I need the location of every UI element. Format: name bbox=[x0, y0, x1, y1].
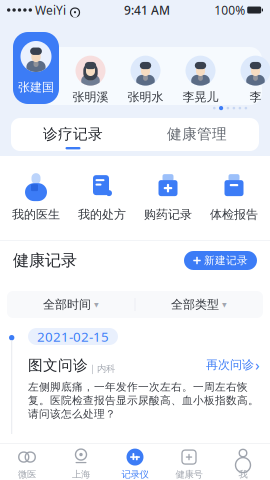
button[interactable]: 健康管理 bbox=[135, 118, 259, 151]
button[interactable]: 新建记录 bbox=[184, 251, 257, 270]
staticText: 2021-02-15 bbox=[37, 328, 109, 345]
button[interactable]: 记录仪 bbox=[108, 444, 162, 480]
staticText: 诊疗记录 bbox=[43, 125, 103, 143]
staticText: ▾ bbox=[222, 299, 227, 310]
staticText: 李 bbox=[249, 90, 261, 104]
staticText: 体检报告 bbox=[210, 207, 258, 222]
button[interactable]: 全部类型 bbox=[135, 291, 262, 318]
staticText: 图文问诊 bbox=[28, 356, 88, 374]
staticText: 全部时间 bbox=[43, 297, 91, 312]
staticText: 张明水 bbox=[127, 90, 163, 104]
staticText: 上海 bbox=[72, 469, 90, 480]
button[interactable]: 我 bbox=[216, 444, 270, 480]
staticText: 我 bbox=[238, 469, 247, 480]
button[interactable]: 李晃儿 bbox=[173, 55, 228, 105]
staticText: 健康管理 bbox=[167, 125, 227, 143]
button[interactable]: 再次问诊 bbox=[206, 355, 260, 374]
button[interactable]: 李 bbox=[228, 55, 270, 105]
button[interactable]: 微医 bbox=[0, 444, 54, 480]
staticText: 微医 bbox=[18, 469, 36, 480]
staticText: ▾ bbox=[94, 299, 99, 310]
button[interactable]: 购药记录 bbox=[135, 170, 201, 224]
staticText: 张明溪 bbox=[72, 90, 108, 104]
button[interactable]: 张建国 bbox=[13, 32, 59, 104]
staticText: ｜内科 bbox=[88, 363, 115, 374]
staticText: 购药记录 bbox=[144, 207, 192, 222]
staticText: 新建记录 bbox=[204, 254, 248, 267]
staticText: 李晃儿 bbox=[182, 90, 218, 104]
staticText: 全部类型 bbox=[171, 297, 219, 312]
staticText: WeiYi bbox=[35, 2, 66, 18]
staticText: 左侧脚底痛，一年发作一次左右。一周左右恢复。医院检查报告显示尿酸高、血小板指数高… bbox=[28, 380, 259, 421]
button[interactable]: 诊疗记录 bbox=[11, 118, 135, 151]
staticText: 我的医生 bbox=[12, 207, 60, 222]
button[interactable]: 我的医生 bbox=[3, 170, 69, 224]
staticText: 健康号 bbox=[175, 469, 202, 480]
staticText: 记录仪 bbox=[121, 469, 148, 480]
button[interactable]: 健康号 bbox=[162, 444, 216, 480]
staticText: 100% bbox=[214, 2, 245, 18]
staticText: 再次问诊 bbox=[206, 357, 254, 372]
button[interactable]: 张明溪 bbox=[63, 55, 118, 105]
staticText: 我的处方 bbox=[78, 207, 126, 222]
staticText: 9:41 AM bbox=[124, 2, 170, 18]
button[interactable]: 张明水 bbox=[118, 55, 173, 105]
staticText: 健康记录 bbox=[13, 251, 77, 270]
button[interactable]: 体检报告 bbox=[201, 170, 267, 224]
button[interactable]: 上海 bbox=[54, 444, 108, 480]
staticText: › bbox=[255, 355, 260, 374]
staticText: 张建国 bbox=[18, 80, 54, 95]
button[interactable]: 全部时间 bbox=[8, 291, 135, 318]
button[interactable]: 我的处方 bbox=[69, 170, 135, 224]
